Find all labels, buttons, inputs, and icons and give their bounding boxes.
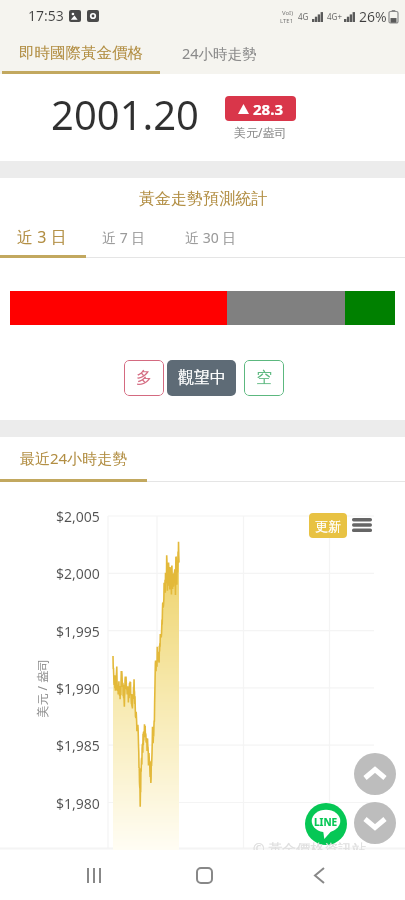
staticText: 17:53	[28, 6, 64, 25]
staticText: $2,005	[56, 507, 100, 526]
staticText: LTE1	[280, 17, 294, 25]
staticText: 4G+	[327, 11, 342, 22]
button[interactable]: Scroll down	[354, 802, 396, 844]
staticText: $1,980	[56, 794, 100, 813]
staticText: 最近24小時走勢	[20, 448, 128, 468]
staticText: LINE	[314, 815, 338, 829]
staticText: $1,985	[56, 736, 100, 755]
button[interactable]: Back	[289, 850, 349, 900]
staticText: $1,995	[56, 622, 100, 641]
button[interactable]: 多	[124, 360, 164, 396]
button[interactable]: 空	[244, 360, 284, 396]
staticText: VoI)	[282, 9, 293, 17]
staticText: 空	[256, 368, 272, 388]
staticText: 26%	[359, 7, 387, 26]
staticText: 近 30 日	[185, 228, 237, 247]
button[interactable]: Scroll up	[354, 753, 396, 795]
staticText: 近 7 日	[102, 228, 146, 247]
staticText: 黃金走勢預測統計	[139, 189, 267, 209]
staticText: 美元 / 盎司	[33, 658, 49, 717]
staticText: 多	[136, 368, 152, 388]
button[interactable]: 更新	[309, 513, 347, 538]
button[interactable]: 即時國際黃金價格	[0, 32, 161, 74]
staticText: $2,000	[56, 564, 100, 583]
staticText: 更新	[315, 518, 341, 534]
button[interactable]: 近 7 日	[84, 216, 164, 258]
staticText: 即時國際黃金價格	[19, 43, 143, 63]
staticText: 觀望中	[178, 368, 226, 388]
button[interactable]: Home	[174, 850, 234, 900]
button[interactable]: 近 30 日	[164, 216, 258, 258]
button[interactable]: 觀望中	[167, 360, 236, 396]
button[interactable]: 24小時走勢	[161, 32, 277, 74]
button[interactable]: Recents	[64, 850, 124, 900]
staticText: 24小時走勢	[182, 43, 257, 63]
staticText: 美元/盎司	[234, 124, 287, 140]
button[interactable]: Menu	[352, 518, 372, 532]
staticText: © 黃金價格資訊站	[253, 839, 367, 858]
staticText: 4G	[298, 11, 309, 22]
staticText: 28.3	[253, 99, 283, 119]
staticText: 2001.20	[51, 87, 199, 141]
button[interactable]: 近 3 日	[0, 216, 84, 258]
button[interactable]: LINE	[305, 803, 347, 845]
staticText: $1,990	[56, 679, 100, 698]
staticText: 近 3 日	[17, 226, 67, 248]
